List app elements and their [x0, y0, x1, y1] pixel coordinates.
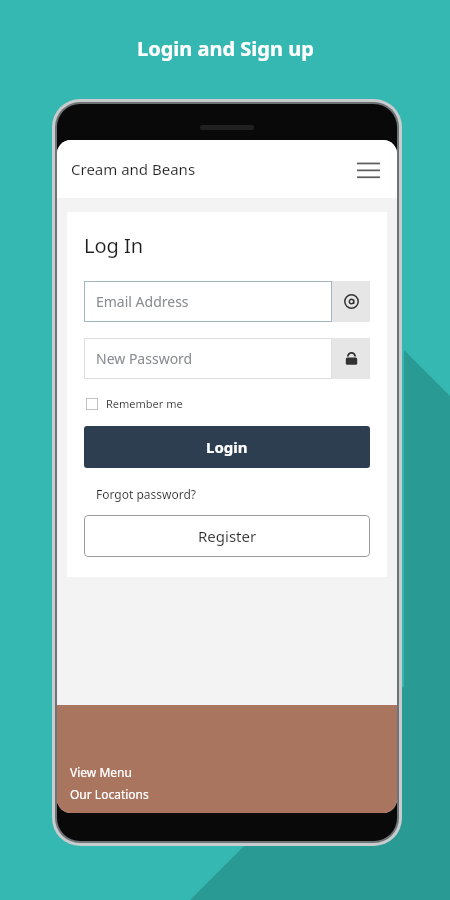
staticText: Remember me: [106, 396, 183, 411]
button[interactable]: Register: [84, 515, 370, 557]
button[interactable]: Email address field: [332, 281, 370, 322]
staticText: Login and Sign up: [137, 35, 314, 62]
button[interactable]: New Password: [84, 338, 332, 379]
button[interactable]: View Menu: [70, 761, 132, 783]
button[interactable]: Login: [84, 426, 370, 468]
staticText: Our Locations: [70, 786, 149, 802]
staticText: View Menu: [70, 764, 132, 780]
staticText: Register: [198, 526, 257, 546]
staticText: Login: [206, 437, 248, 457]
button[interactable]: Forgot password?: [96, 484, 197, 504]
staticText: Email Address: [96, 292, 189, 311]
staticText: Log In: [84, 232, 144, 259]
staticText: New Password: [96, 349, 193, 368]
button[interactable]: Remember me: [84, 394, 187, 413]
button[interactable]: Email Address: [84, 281, 332, 322]
button[interactable]: Our Locations: [70, 783, 149, 805]
staticText: Cream and Beans: [71, 159, 196, 179]
staticText: Forgot password?: [96, 486, 197, 502]
button[interactable]: Password field: [332, 338, 370, 379]
button[interactable]: Open navigation menu: [350, 151, 386, 187]
